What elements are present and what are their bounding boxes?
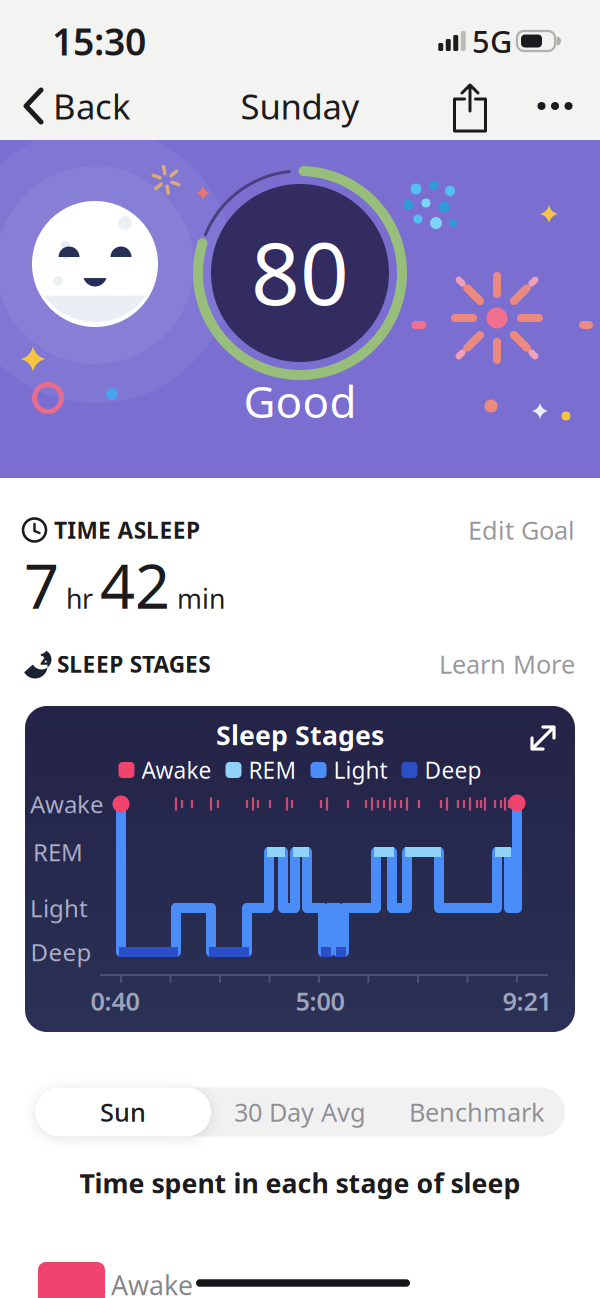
- staticText: 0:40: [90, 984, 139, 1018]
- staticText: min: [177, 581, 225, 616]
- button[interactable]: 30 Day Avg: [212, 1087, 388, 1136]
- staticText: 5G: [472, 21, 512, 61]
- staticText: Light: [333, 755, 387, 785]
- staticText: 5:00: [295, 984, 344, 1018]
- staticText: hr: [66, 581, 93, 616]
- staticText: Sleep Stages: [216, 717, 384, 753]
- staticText: Learn More: [439, 647, 575, 681]
- button[interactable]: Sun: [35, 1087, 211, 1136]
- staticText: z: [40, 644, 50, 670]
- staticText: Light: [30, 892, 88, 924]
- staticText: Time spent in each stage of sleep: [79, 1165, 520, 1201]
- staticText: Good: [243, 372, 356, 430]
- staticText: 9:21: [502, 984, 551, 1018]
- staticText: 7: [24, 544, 59, 626]
- staticText: SLEEP STAGES: [57, 649, 210, 679]
- button[interactable]: Benchmark: [389, 1087, 565, 1136]
- staticText: Deep: [424, 755, 481, 785]
- staticText: Deep: [30, 936, 91, 968]
- staticText: Sun: [100, 1095, 146, 1129]
- button[interactable]: Expand: [521, 716, 565, 760]
- button[interactable]: Edit Goal: [435, 508, 575, 552]
- staticText: REM: [33, 836, 83, 868]
- staticText: Awake: [30, 788, 104, 820]
- staticText: 15:30: [52, 16, 146, 66]
- button[interactable]: Back: [16, 79, 138, 133]
- staticText: Edit Goal: [468, 513, 575, 547]
- button[interactable]: Share: [447, 80, 493, 136]
- staticText: TIME ASLEEP: [54, 515, 200, 545]
- button[interactable]: More: [529, 84, 581, 128]
- staticText: 30 Day Avg: [234, 1095, 366, 1129]
- staticText: Awake: [111, 1267, 193, 1298]
- staticText: Back: [53, 83, 131, 129]
- staticText: Awake: [141, 755, 211, 785]
- staticText: Benchmark: [409, 1095, 545, 1129]
- staticText: Sunday: [240, 83, 359, 129]
- staticText: 42: [100, 544, 170, 626]
- button[interactable]: Learn More: [425, 642, 575, 686]
- staticText: REM: [248, 755, 296, 785]
- staticText: 80: [251, 215, 349, 329]
